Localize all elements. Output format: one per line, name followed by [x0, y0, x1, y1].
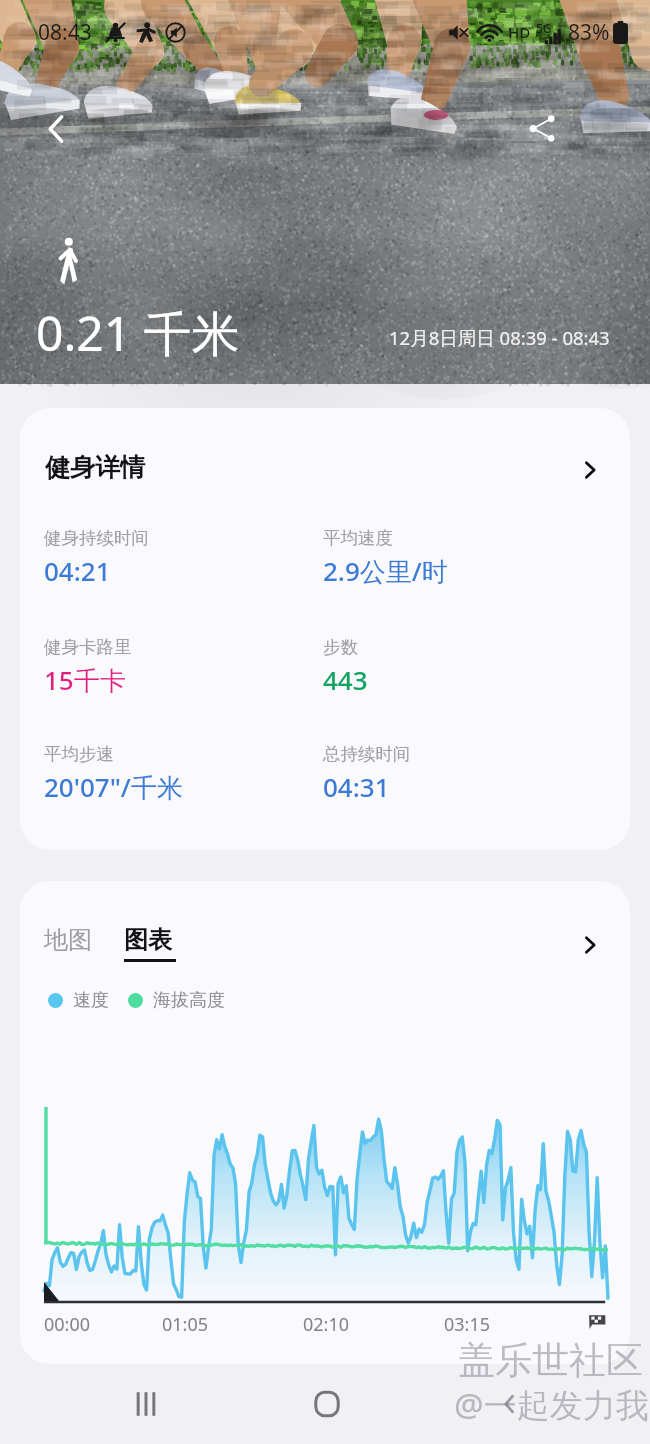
staticText: 443	[323, 662, 368, 697]
staticText: 01:05	[162, 1312, 209, 1337]
button[interactable]: Recents	[110, 1376, 182, 1432]
button[interactable]: 健身详情	[20, 408, 630, 850]
staticText: 总持续时间	[323, 743, 411, 765]
button[interactable]: 图表	[124, 925, 176, 962]
staticText: 83%	[568, 18, 610, 47]
staticText: 地图	[44, 925, 92, 955]
staticText: 08:43	[38, 18, 92, 47]
staticText: 02:10	[303, 1312, 350, 1337]
staticText: 20'07"/千米	[44, 769, 183, 805]
staticText: 04:21	[44, 553, 111, 588]
staticText: 04:31	[323, 769, 390, 804]
staticText: 健身详情	[45, 452, 145, 483]
staticText: 0.21 千米	[36, 300, 240, 366]
staticText: 12月8日周日 08:39 - 08:43	[389, 325, 610, 350]
staticText: 速度	[73, 989, 109, 1012]
button[interactable]: 地图	[44, 925, 92, 955]
button[interactable]: Open chart	[570, 925, 610, 965]
staticText: 03:15	[444, 1312, 491, 1337]
staticText: 健身持续时间	[44, 527, 149, 549]
staticText: 00:00	[44, 1312, 91, 1337]
staticText: 5G	[536, 20, 552, 36]
staticText: 平均步速	[44, 743, 114, 765]
button[interactable]: Back	[474, 1376, 546, 1432]
staticText: HD	[508, 22, 531, 42]
staticText: 15千卡	[44, 662, 126, 698]
staticText: @一起发力我	[454, 1382, 649, 1427]
button[interactable]: Back	[23, 96, 89, 162]
staticText: 盖乐世社区	[458, 1337, 643, 1384]
staticText: 平均速度	[323, 527, 393, 549]
button[interactable]: Home	[291, 1376, 363, 1432]
staticText: 2.9公里/时	[323, 553, 448, 589]
button[interactable]: Open fitness details	[570, 450, 610, 490]
staticText: 步数	[323, 636, 358, 658]
staticText: 图表	[124, 925, 172, 955]
staticText: 健身卡路里	[44, 636, 132, 658]
staticText: 海拔高度	[153, 989, 225, 1012]
button[interactable]: Share	[509, 95, 575, 161]
